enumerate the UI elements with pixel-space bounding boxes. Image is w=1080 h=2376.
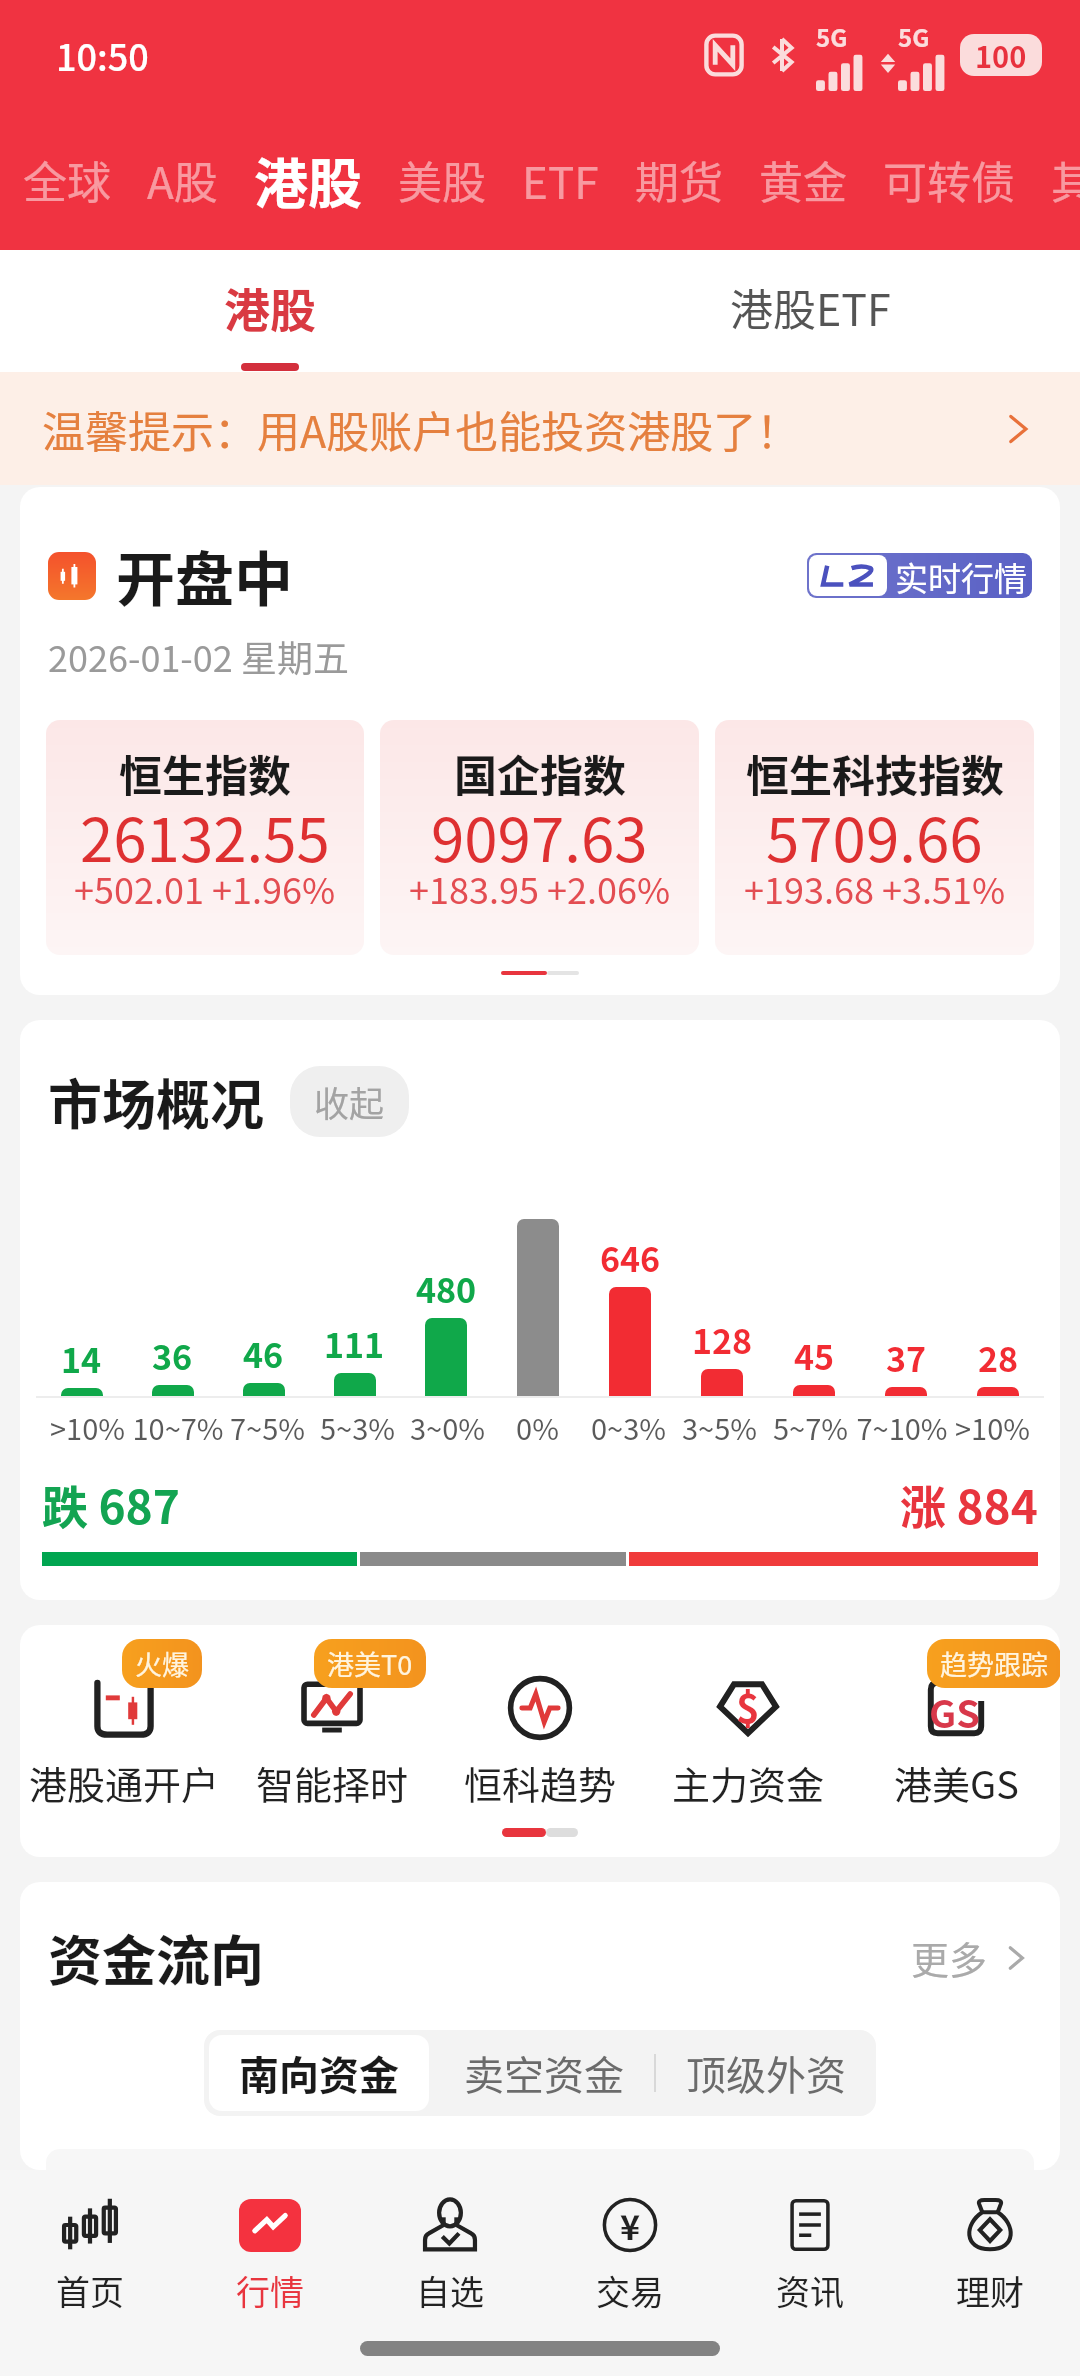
staticText: ¥ bbox=[620, 2201, 641, 2250]
staticText: 14 bbox=[61, 1334, 102, 1383]
button[interactable]: 黄金 bbox=[741, 148, 865, 212]
staticText: 期货 bbox=[635, 148, 723, 212]
staticText: 全球 bbox=[23, 148, 111, 212]
button[interactable]: 港股 bbox=[0, 250, 540, 372]
staticText: 10~7% bbox=[132, 1406, 222, 1448]
staticText: 市场概况 bbox=[48, 1062, 264, 1140]
staticText: 2026-01-02 星期五 bbox=[48, 630, 349, 682]
staticText: 480 bbox=[416, 1264, 477, 1313]
staticText: 100 bbox=[975, 34, 1027, 76]
staticText: 7~10% bbox=[856, 1406, 947, 1448]
staticText: 港美GS bbox=[894, 1755, 1019, 1810]
staticText: 温馨提示：用A股账户也能投资港股了！ bbox=[42, 398, 800, 460]
staticText: A股 bbox=[147, 148, 218, 212]
button[interactable]: 火爆 bbox=[20, 1641, 228, 1810]
staticText: 卖空资金 bbox=[464, 2044, 624, 2102]
button[interactable]: 首页 bbox=[0, 2186, 180, 2321]
staticText: 恒生指数 bbox=[119, 742, 291, 804]
staticText: 恒生科技指数 bbox=[746, 742, 1004, 804]
staticText: 可转债 bbox=[883, 148, 1015, 212]
staticText: 智能择时 bbox=[256, 1755, 409, 1810]
staticText: 首页 bbox=[56, 2266, 124, 2315]
staticText: 顶级外资 bbox=[686, 2044, 846, 2102]
button[interactable]: 恒生科技指数 bbox=[715, 720, 1034, 955]
button[interactable]: 行情 bbox=[180, 2186, 360, 2321]
button[interactable]: 更多 bbox=[911, 1930, 1032, 1985]
staticText: 0~3% bbox=[591, 1406, 666, 1448]
staticText: 收起 bbox=[314, 1076, 385, 1127]
staticText: 自选 bbox=[416, 2266, 484, 2315]
staticText: 交易 bbox=[596, 2266, 664, 2315]
staticText: 3~5% bbox=[682, 1406, 757, 1448]
staticText: 其他 bbox=[1051, 148, 1062, 212]
staticText: 美股 bbox=[398, 148, 486, 212]
staticText: 111 bbox=[324, 1319, 385, 1368]
staticText: 资讯 bbox=[776, 2266, 844, 2315]
button[interactable]: 南向资金 bbox=[209, 2035, 429, 2111]
staticText: 128 bbox=[692, 1315, 753, 1364]
button[interactable]: 资讯 bbox=[720, 2186, 900, 2321]
button[interactable]: 理财 bbox=[900, 2186, 1080, 2321]
staticText: 恒科趋势 bbox=[464, 1755, 617, 1810]
staticText: 火爆 bbox=[135, 1644, 189, 1683]
button[interactable]: 恒生指数 bbox=[46, 720, 364, 955]
staticText: 45 bbox=[794, 1331, 835, 1380]
staticText: ETF bbox=[522, 148, 599, 212]
button[interactable]: 顶级外资 bbox=[656, 2030, 876, 2116]
staticText: 5~3% bbox=[320, 1406, 395, 1448]
button[interactable]: 港股 bbox=[236, 141, 380, 219]
button[interactable]: 全球 bbox=[5, 148, 129, 212]
button[interactable]: 期货 bbox=[617, 148, 741, 212]
button[interactable]: A股 bbox=[129, 148, 236, 212]
staticText: >10% bbox=[955, 1406, 1030, 1448]
staticText: 0% bbox=[516, 1406, 559, 1448]
button[interactable]: 收起 bbox=[290, 1066, 409, 1137]
staticText: 28 bbox=[978, 1333, 1019, 1382]
staticText: 实时行情 bbox=[895, 553, 1027, 598]
staticText: 9097.63 bbox=[431, 792, 648, 879]
staticText: 更多 bbox=[911, 1930, 988, 1985]
staticText: 资金流向 bbox=[48, 1918, 264, 1996]
staticText: 37 bbox=[886, 1333, 927, 1382]
staticText: 趋势跟踪 bbox=[940, 1644, 1048, 1683]
staticText: 7~5% bbox=[230, 1406, 305, 1448]
staticText: 主力资金 bbox=[672, 1755, 825, 1810]
staticText: GS bbox=[929, 1684, 980, 1739]
button[interactable]: 可转债 bbox=[865, 148, 1033, 212]
button[interactable]: 自选 bbox=[360, 2186, 540, 2321]
staticText: 5~7% bbox=[773, 1406, 848, 1448]
button[interactable]: 港股ETF bbox=[540, 250, 1080, 372]
staticText: 港股 bbox=[254, 141, 362, 219]
button[interactable]: 美股 bbox=[380, 148, 504, 212]
button[interactable]: GS bbox=[852, 1641, 1060, 1810]
staticText: 开盘中 bbox=[116, 533, 294, 618]
staticText: 港股通开户 bbox=[29, 1755, 220, 1810]
staticText: 36 bbox=[152, 1331, 193, 1380]
staticText: 3~0% bbox=[410, 1406, 485, 1448]
button[interactable]: 实时行情 bbox=[807, 553, 1032, 598]
button[interactable]: $ bbox=[644, 1641, 852, 1810]
staticText: >10% bbox=[50, 1406, 125, 1448]
staticText: +193.68 +3.51% bbox=[744, 862, 1006, 914]
staticText: $ bbox=[736, 1677, 760, 1735]
button[interactable]: 港美T0 bbox=[228, 1641, 436, 1810]
button[interactable]: 国企指数 bbox=[380, 720, 699, 955]
staticText: +502.01 +1.96% bbox=[74, 862, 336, 914]
staticText: 46 bbox=[243, 1329, 284, 1378]
staticText: 涨 884 bbox=[900, 1471, 1038, 1538]
staticText: 国企指数 bbox=[454, 742, 626, 804]
staticText: 跌 687 bbox=[42, 1471, 180, 1538]
button[interactable]: 卖空资金 bbox=[434, 2030, 654, 2116]
staticText: 理财 bbox=[956, 2266, 1024, 2315]
staticText: 5709.66 bbox=[766, 792, 983, 879]
staticText: 26132.55 bbox=[80, 792, 330, 879]
staticText: 646 bbox=[600, 1233, 661, 1282]
button[interactable]: ¥ bbox=[540, 2186, 720, 2321]
staticText: +183.95 +2.06% bbox=[409, 862, 671, 914]
button[interactable]: 其他 bbox=[1033, 148, 1080, 212]
button[interactable]: 温馨提示：用A股账户也能投资港股了！ bbox=[0, 372, 1080, 485]
staticText: 10:50 bbox=[56, 29, 149, 81]
button[interactable]: ETF bbox=[504, 148, 617, 212]
button[interactable]: 恒科趋势 bbox=[436, 1641, 644, 1810]
staticText: 5G bbox=[816, 19, 848, 54]
